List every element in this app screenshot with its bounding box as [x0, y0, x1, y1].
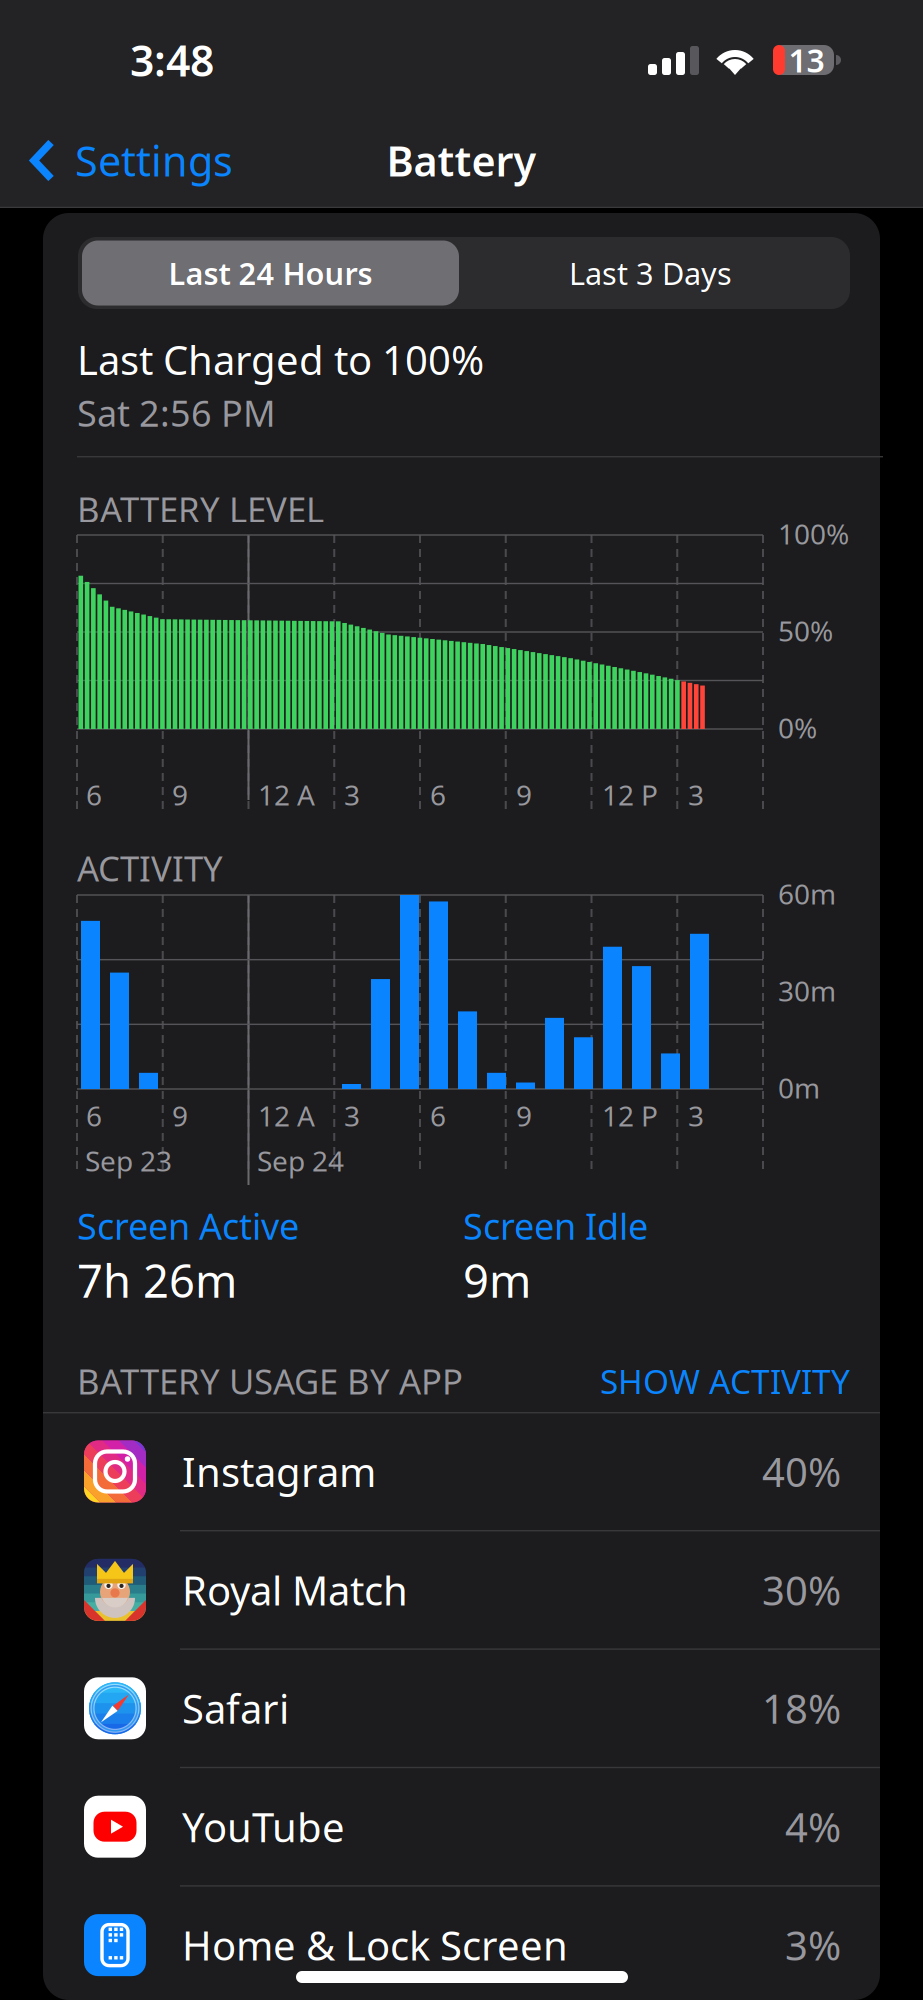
staticText: 13 [788, 39, 824, 81]
staticText: Screen Active [77, 1202, 299, 1250]
staticText: Settings [75, 133, 233, 188]
staticText: Last 3 Days [569, 253, 732, 293]
staticText: 9 [516, 776, 532, 813]
staticText: 3% [785, 1918, 841, 1972]
staticText: Screen Idle [463, 1202, 648, 1250]
staticText: 6 [86, 1097, 102, 1134]
staticText: Safari [182, 1682, 289, 1735]
staticText: 9 [172, 776, 188, 813]
staticText: 12 P [602, 1097, 658, 1134]
staticText: 40% [762, 1445, 841, 1498]
staticText: 100% [778, 515, 849, 552]
staticText: 9 [516, 1097, 532, 1134]
staticText: 0m [778, 1069, 820, 1106]
button[interactable]: SHOW ACTIVITY [600, 1359, 850, 1403]
staticText: 7h 26m [77, 1250, 237, 1310]
staticText: 60m [778, 875, 836, 912]
staticText: 12 A [258, 1097, 315, 1134]
staticText: 9m [463, 1250, 531, 1310]
button[interactable]: Last 24 Hours [82, 240, 459, 305]
staticText: ACTIVITY [77, 845, 223, 891]
staticText: SHOW ACTIVITY [600, 1359, 850, 1403]
staticText: 12 P [602, 776, 658, 813]
staticText: Home & Lock Screen [182, 1918, 568, 1972]
button[interactable]: Instagram [43, 1413, 880, 1530]
staticText: YouTube [182, 1800, 345, 1853]
staticText: 9 [172, 1097, 188, 1134]
staticText: Last 24 Hours [168, 253, 372, 293]
staticText: 3 [688, 1097, 704, 1134]
staticText: 0% [778, 709, 817, 746]
staticText: 30% [762, 1563, 841, 1616]
staticText: 4% [785, 1800, 841, 1853]
button[interactable]: Settings [0, 127, 233, 206]
staticText: 30m [778, 972, 836, 1009]
staticText: 3:48 [130, 32, 214, 88]
staticText: 6 [430, 1097, 446, 1134]
staticText: 6 [430, 776, 446, 813]
button[interactable]: YouTube [43, 1768, 880, 1885]
staticText: Battery [386, 133, 536, 188]
button[interactable]: Safari [43, 1650, 880, 1767]
staticText: 3 [344, 776, 360, 813]
staticText: Sep 24 [257, 1142, 344, 1179]
staticText: Royal Match [182, 1563, 408, 1616]
staticText: BATTERY USAGE BY APP [77, 1358, 463, 1404]
staticText: Last Charged to 100% [77, 333, 484, 386]
staticText: 3 [688, 776, 704, 813]
button[interactable]: Home & Lock Screen [43, 1887, 880, 2000]
button[interactable]: Last 3 Days [459, 240, 842, 305]
staticText: 3 [344, 1097, 360, 1134]
staticText: Sep 23 [85, 1142, 172, 1179]
staticText: 18% [762, 1682, 841, 1735]
staticText: BATTERY LEVEL [77, 486, 324, 532]
staticText: Instagram [182, 1445, 376, 1498]
staticText: 12 A [258, 776, 315, 813]
staticText: 50% [778, 612, 833, 649]
button[interactable]: Royal Match [43, 1531, 880, 1648]
staticText: 6 [86, 776, 102, 813]
staticText: Sat 2:56 PM [77, 389, 276, 437]
